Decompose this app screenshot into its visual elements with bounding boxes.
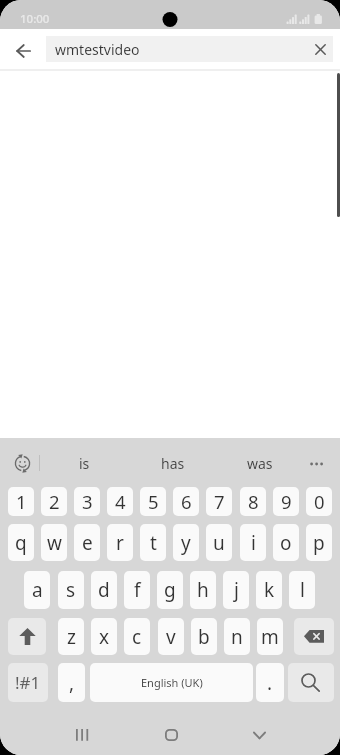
staticText: was: [247, 454, 273, 473]
staticText: l: [300, 577, 305, 603]
button[interactable]: k: [256, 571, 282, 609]
staticText: .: [267, 670, 273, 696]
button[interactable]: g: [157, 571, 183, 609]
button[interactable]: o: [273, 524, 299, 561]
button[interactable]: 7: [206, 487, 232, 516]
staticText: x: [99, 624, 110, 650]
button[interactable]: u: [206, 524, 232, 561]
button[interactable]: t: [140, 524, 166, 561]
staticText: n: [231, 624, 243, 650]
button[interactable]: w: [41, 524, 67, 561]
staticText: ,: [69, 670, 75, 696]
staticText: b: [198, 624, 210, 650]
staticText: o: [280, 530, 292, 556]
staticText: s: [66, 577, 76, 603]
button[interactable]: 2: [41, 487, 67, 516]
staticText: v: [166, 624, 176, 650]
staticText: 6: [181, 489, 192, 514]
button[interactable]: p: [306, 524, 332, 561]
button[interactable]: ,: [58, 663, 85, 702]
button[interactable]: v: [158, 618, 184, 655]
staticText: 0: [314, 489, 325, 514]
staticText: i: [251, 530, 256, 556]
button[interactable]: q: [8, 524, 34, 561]
staticText: 9: [281, 489, 292, 514]
staticText: wmtestvideo: [55, 40, 140, 59]
staticText: r: [116, 530, 124, 556]
button[interactable]: y: [173, 524, 199, 561]
staticText: j: [234, 577, 239, 603]
button[interactable]: Back: [10, 36, 38, 66]
button[interactable]: s: [58, 571, 84, 609]
button[interactable]: 3: [74, 487, 100, 516]
button[interactable]: f: [124, 571, 150, 609]
staticText: 10:00: [20, 11, 50, 27]
button[interactable]: r: [107, 524, 133, 561]
staticText: z: [67, 624, 76, 650]
button[interactable]: has: [138, 449, 208, 478]
button[interactable]: m: [257, 618, 283, 655]
staticText: !#1: [15, 671, 41, 694]
staticText: 3: [82, 489, 93, 514]
button[interactable]: h: [190, 571, 216, 609]
button[interactable]: Clear: [307, 36, 333, 62]
button[interactable]: Search: [288, 663, 334, 702]
staticText: w: [47, 530, 62, 556]
button[interactable]: 1: [8, 487, 34, 516]
button[interactable]: !#1: [8, 663, 48, 702]
button[interactable]: was: [225, 449, 295, 478]
button[interactable]: d: [91, 571, 117, 609]
button[interactable]: 8: [240, 487, 266, 516]
staticText: 4: [115, 489, 126, 514]
staticText: a: [32, 577, 43, 603]
staticText: 1: [16, 489, 27, 514]
button[interactable]: 5: [140, 487, 166, 516]
button[interactable]: i: [240, 524, 266, 561]
staticText: m: [261, 624, 279, 650]
staticText: 7: [214, 489, 225, 514]
staticText: 2: [49, 489, 60, 514]
staticText: has: [161, 454, 185, 473]
staticText: u: [213, 530, 225, 556]
staticText: 8: [248, 489, 259, 514]
button[interactable]: Shift: [8, 618, 46, 655]
staticText: q: [15, 530, 27, 556]
button[interactable]: z: [58, 618, 84, 655]
button[interactable]: Home: [151, 721, 191, 749]
staticText: c: [132, 624, 142, 650]
button[interactable]: is: [49, 449, 119, 478]
button[interactable]: wmtestvideo: [46, 36, 333, 62]
button[interactable]: 6: [173, 487, 199, 516]
staticText: g: [164, 577, 176, 603]
button[interactable]: Emoji: [8, 449, 37, 478]
button[interactable]: Recent apps: [62, 721, 102, 749]
button[interactable]: a: [24, 571, 50, 609]
button[interactable]: l: [289, 571, 315, 609]
staticText: t: [150, 530, 157, 556]
button[interactable]: Back: [239, 721, 279, 749]
staticText: 5: [148, 489, 159, 514]
button[interactable]: n: [224, 618, 250, 655]
staticText: d: [98, 577, 110, 603]
staticText: f: [134, 577, 141, 603]
staticText: p: [313, 530, 325, 556]
staticText: y: [181, 530, 191, 556]
staticText: e: [82, 530, 93, 556]
button[interactable]: 0: [306, 487, 332, 516]
button[interactable]: b: [191, 618, 217, 655]
button[interactable]: 4: [107, 487, 133, 516]
staticText: k: [264, 577, 275, 603]
button[interactable]: Backspace: [294, 618, 334, 655]
button[interactable]: x: [91, 618, 117, 655]
button[interactable]: 9: [273, 487, 299, 516]
button[interactable]: English (UK): [90, 663, 253, 702]
staticText: h: [197, 577, 209, 603]
staticText: English (UK): [141, 675, 203, 690]
staticText: is: [79, 454, 90, 473]
button[interactable]: e: [74, 524, 100, 561]
button[interactable]: More options: [301, 449, 333, 478]
button[interactable]: c: [124, 618, 150, 655]
button[interactable]: j: [223, 571, 249, 609]
button[interactable]: .: [256, 663, 284, 702]
